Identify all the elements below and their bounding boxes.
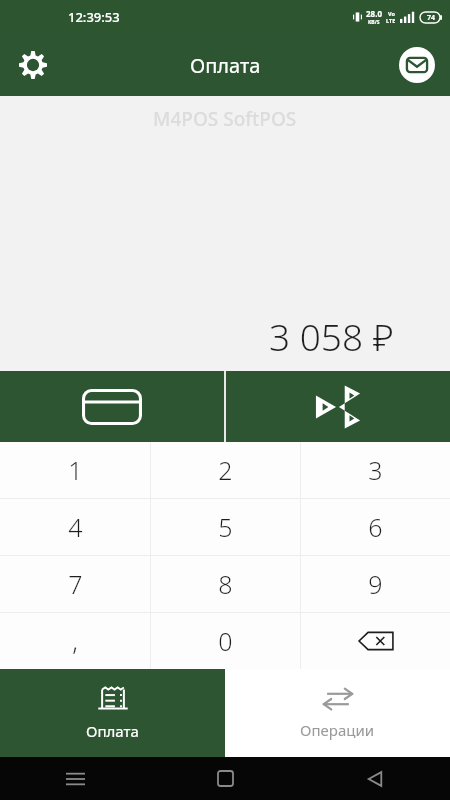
staticText: 28.0 [366, 8, 382, 19]
staticText: 3 058 ₽ [269, 311, 394, 361]
button[interactable]: 0 [151, 613, 300, 669]
button[interactable]: Операции [225, 669, 450, 757]
button[interactable]: 4 [0, 499, 150, 555]
button[interactable]: 6 [301, 499, 450, 555]
staticText: KB/S [368, 19, 380, 26]
button[interactable]: Messages [394, 42, 440, 88]
staticText: 4 [68, 510, 83, 544]
button[interactable]: 1 [0, 442, 150, 498]
staticText: M4POS SoftPOS [153, 106, 297, 132]
staticText: 74 [427, 13, 436, 23]
staticText: 12:39:53 [68, 8, 120, 26]
staticText: Оплата [190, 52, 261, 79]
staticText: 6 [368, 510, 383, 544]
staticText: 9 [368, 567, 383, 601]
button[interactable]: 7 [0, 556, 150, 612]
button[interactable]: 9 [301, 556, 450, 612]
staticText: 1 [68, 453, 83, 487]
staticText: 0 [218, 624, 233, 658]
staticText: 3 [368, 453, 383, 487]
button[interactable]: , [0, 613, 150, 669]
button[interactable]: 2 [151, 442, 300, 498]
staticText: 7 [68, 567, 83, 601]
button[interactable]: Backspace [301, 613, 450, 669]
staticText: LTE [386, 17, 396, 24]
button[interactable]: Settings [10, 42, 56, 88]
staticText: Vo [388, 10, 395, 17]
staticText: Операции [300, 720, 375, 740]
staticText: 8 [218, 567, 233, 601]
button[interactable]: 5 [151, 499, 300, 555]
staticText: 2 [218, 453, 233, 487]
staticText: , [72, 624, 78, 658]
button[interactable]: Card payment [0, 371, 224, 442]
staticText: 5 [218, 510, 233, 544]
button[interactable]: Оплата [0, 669, 225, 757]
button[interactable]: 8 [151, 556, 300, 612]
button[interactable]: Bluetooth [226, 371, 450, 442]
button[interactable]: 3 [301, 442, 450, 498]
staticText: Оплата [86, 721, 139, 741]
